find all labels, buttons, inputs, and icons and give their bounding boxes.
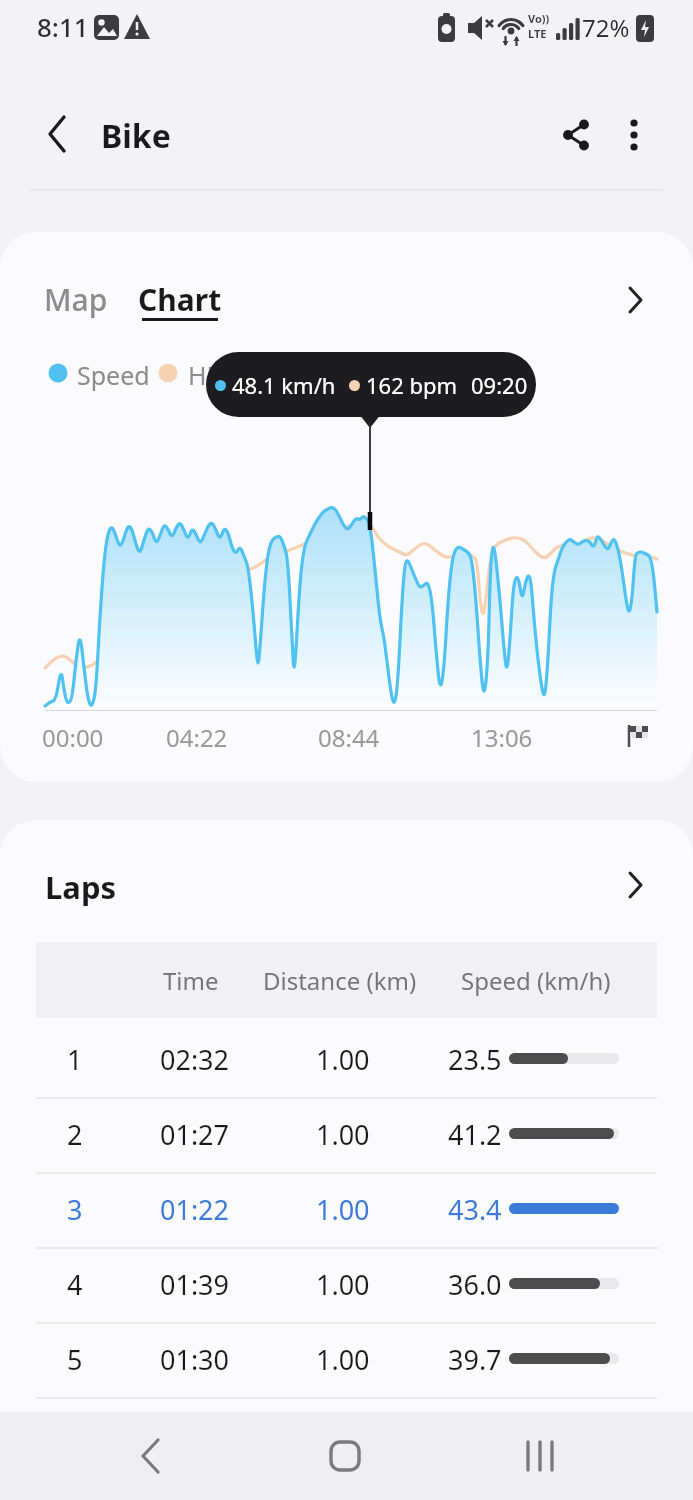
button[interactable] xyxy=(610,108,660,158)
button[interactable] xyxy=(0,1322,693,1397)
staticText: 1.00 xyxy=(316,1266,370,1303)
staticText: Bike xyxy=(101,114,171,158)
button[interactable] xyxy=(315,1426,375,1486)
button[interactable] xyxy=(612,865,656,905)
staticText: Distance (km) xyxy=(263,964,417,997)
staticText: LTE xyxy=(528,26,547,41)
staticText: 39.7 xyxy=(448,1341,502,1378)
staticText: HR xyxy=(188,358,223,392)
staticText: 08:44 xyxy=(318,721,380,751)
staticText: 3 xyxy=(67,1191,83,1228)
staticText: 01:39 xyxy=(160,1266,230,1303)
button[interactable] xyxy=(510,1426,570,1486)
button[interactable] xyxy=(120,1426,180,1486)
staticText: 00:00 xyxy=(42,721,104,751)
staticText: 162 bpm xyxy=(366,370,458,400)
staticText: 04:22 xyxy=(166,721,228,751)
staticText: 2 xyxy=(67,1116,83,1153)
staticText: 8:11 xyxy=(37,9,89,44)
staticText: 01:27 xyxy=(160,1116,230,1153)
staticText: 41.2 xyxy=(448,1116,502,1153)
button[interactable] xyxy=(0,1247,693,1322)
staticText: 4 xyxy=(67,1266,83,1303)
staticText: Time xyxy=(163,964,219,997)
button[interactable]: Chart xyxy=(138,276,222,322)
staticText: 43.4 xyxy=(448,1191,502,1228)
staticText: 1.00 xyxy=(316,1116,370,1153)
staticText: Vo)) xyxy=(528,11,550,26)
staticText: Laps xyxy=(45,866,117,908)
staticText: 1 xyxy=(67,1041,83,1078)
staticText: 09:20 xyxy=(471,370,528,400)
staticText: 36.0 xyxy=(448,1266,502,1303)
staticText: 23.5 xyxy=(448,1041,502,1078)
staticText: 1.00 xyxy=(316,1041,370,1078)
staticText: Map xyxy=(44,279,108,320)
staticText: Chart xyxy=(138,279,222,320)
button[interactable] xyxy=(0,1022,693,1097)
button[interactable] xyxy=(612,280,656,320)
staticText: 1.00 xyxy=(316,1191,370,1228)
staticText: 13:06 xyxy=(471,721,533,751)
button[interactable] xyxy=(552,108,602,158)
staticText: Speed (km/h) xyxy=(461,964,611,997)
staticText: Speed xyxy=(77,358,150,392)
button[interactable]: Map xyxy=(38,276,114,322)
staticText: 02:32 xyxy=(160,1041,230,1078)
staticText: 1.00 xyxy=(316,1341,370,1378)
staticText: 72% xyxy=(582,11,630,44)
button[interactable] xyxy=(30,107,84,161)
button[interactable] xyxy=(0,1172,693,1247)
staticText: 01:30 xyxy=(160,1341,230,1378)
button[interactable] xyxy=(0,1097,693,1172)
staticText: 5 xyxy=(67,1341,83,1378)
staticText: 01:22 xyxy=(160,1191,230,1228)
staticText: 48.1 km/h xyxy=(232,370,336,400)
